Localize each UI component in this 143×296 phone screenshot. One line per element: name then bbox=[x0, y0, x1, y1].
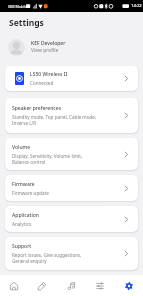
staticText: View profile bbox=[31, 47, 59, 54]
button[interactable]: Edit bbox=[28, 275, 56, 296]
staticText: Support bbox=[12, 243, 32, 250]
staticText: KEF Developer bbox=[31, 40, 66, 47]
staticText: Settings bbox=[9, 17, 44, 29]
staticText: Firmware update bbox=[12, 190, 49, 196]
button[interactable]: LS50 Wireless II bbox=[5, 66, 138, 91]
button[interactable]: Home bbox=[0, 275, 28, 296]
button[interactable]: Equalizer bbox=[85, 275, 114, 296]
staticText: Application bbox=[12, 212, 39, 219]
staticText: Display, Sensitivity, Volume limit, Bala… bbox=[12, 153, 83, 165]
staticText: Connected bbox=[30, 80, 54, 86]
button[interactable]: Music bbox=[56, 275, 85, 296]
button[interactable]: Speaker preferences bbox=[5, 98, 138, 133]
staticText: Volume bbox=[12, 144, 31, 151]
staticText: SIM Mobile bbox=[8, 4, 27, 9]
button[interactable]: KEF Developer bbox=[0, 37, 143, 57]
staticText: Standby mode, Top panel, Cable mode, Inv… bbox=[12, 114, 97, 126]
staticText: Analytics bbox=[12, 221, 32, 227]
staticText: Report issues, Give suggestions, General… bbox=[12, 252, 82, 264]
staticText: 14:22 bbox=[131, 3, 142, 9]
button[interactable]: Application bbox=[5, 206, 138, 232]
staticText: Firmware bbox=[12, 181, 35, 188]
button[interactable]: Support bbox=[5, 237, 138, 270]
staticText: LS50 Wireless II bbox=[30, 71, 68, 78]
button[interactable]: Firmware bbox=[5, 175, 138, 201]
staticText: Speaker preferences bbox=[12, 105, 62, 112]
button[interactable]: Settings bbox=[114, 275, 143, 296]
button[interactable]: Volume bbox=[5, 138, 138, 170]
